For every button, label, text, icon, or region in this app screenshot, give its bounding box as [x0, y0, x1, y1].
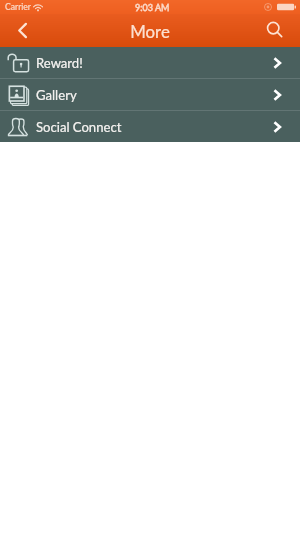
staticText: Carrier: [5, 2, 31, 12]
button[interactable]: Reward!: [0, 47, 300, 78]
button[interactable]: Social Connect: [0, 111, 300, 142]
staticText: Gallery: [36, 87, 77, 103]
button[interactable]: Back: [0, 14, 44, 47]
button[interactable]: Gallery: [0, 79, 300, 110]
staticText: 9:03 AM: [135, 2, 170, 13]
staticText: Reward!: [36, 55, 83, 71]
staticText: Social Connect: [36, 119, 122, 135]
staticText: More: [130, 21, 170, 41]
button[interactable]: Search: [256, 14, 300, 47]
